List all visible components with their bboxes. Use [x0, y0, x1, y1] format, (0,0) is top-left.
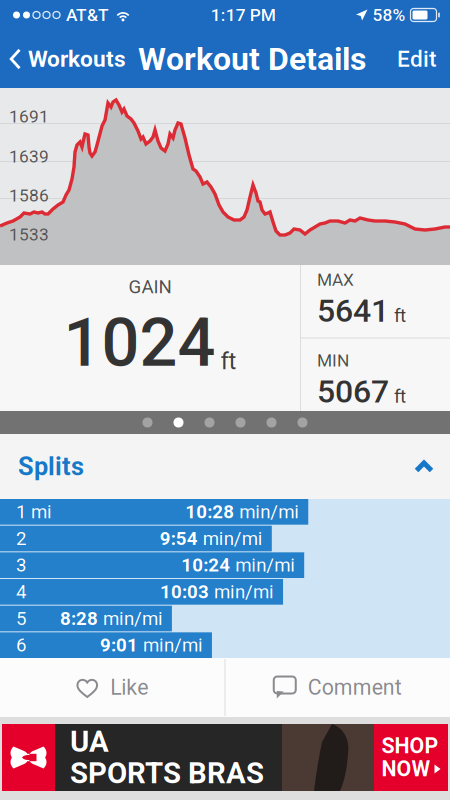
staticText: Splits — [18, 452, 84, 481]
staticText: ft — [394, 385, 406, 407]
staticText: 9:01 — [100, 634, 138, 656]
staticText: AT&T — [66, 5, 109, 25]
button[interactable]: Comment — [225, 658, 450, 717]
staticText: MAX — [317, 270, 354, 290]
staticText: SHOP — [381, 733, 438, 758]
staticText: Like — [110, 675, 148, 700]
staticText: min/mi — [138, 634, 203, 656]
staticText: 6 — [16, 634, 26, 656]
staticText: ft — [220, 347, 236, 375]
button[interactable]: Like — [0, 658, 224, 717]
staticText: 1639 — [9, 146, 49, 167]
staticText: 5641 — [317, 292, 389, 329]
staticText: 1 mi — [16, 501, 52, 523]
staticText: GAIN — [128, 276, 171, 298]
button[interactable]: Edit — [384, 30, 450, 88]
staticText: 2 — [16, 528, 26, 549]
staticText: 9:54 — [160, 528, 198, 549]
staticText: min/mi — [209, 581, 274, 603]
staticText: NOW — [381, 756, 430, 781]
staticText: Edit — [397, 46, 437, 72]
button[interactable]: UA — [0, 717, 450, 800]
staticText: 10:28 — [185, 501, 234, 523]
staticText: SPORTS BRAS — [70, 756, 264, 790]
staticText: 5067 — [317, 373, 389, 410]
staticText: min/mi — [98, 608, 163, 629]
staticText: min/mi — [198, 528, 263, 549]
staticText: Workout Details — [138, 40, 366, 78]
staticText: Workouts — [28, 46, 126, 72]
staticText: 1533 — [9, 224, 49, 245]
staticText: 58% — [372, 5, 405, 25]
staticText: 1:17 PM — [211, 5, 276, 25]
staticText: 10:24 — [181, 554, 230, 576]
staticText: 1691 — [9, 106, 49, 127]
staticText: 10:03 — [160, 581, 209, 603]
staticText: 3 — [16, 554, 26, 576]
staticText: 8:28 — [60, 608, 98, 629]
staticText: 5 — [16, 608, 26, 629]
staticText: 4 — [16, 581, 26, 603]
staticText: ft — [394, 305, 406, 326]
staticText: min/mi — [234, 501, 299, 523]
staticText: UA — [70, 725, 109, 759]
staticText: 1586 — [9, 185, 49, 206]
staticText: 1024 — [63, 304, 215, 382]
staticText: MIN — [317, 350, 349, 371]
staticText: Comment — [308, 675, 402, 700]
button[interactable]: Splits — [0, 434, 450, 499]
button[interactable]: Workouts — [0, 30, 130, 88]
staticText: min/mi — [230, 554, 295, 576]
